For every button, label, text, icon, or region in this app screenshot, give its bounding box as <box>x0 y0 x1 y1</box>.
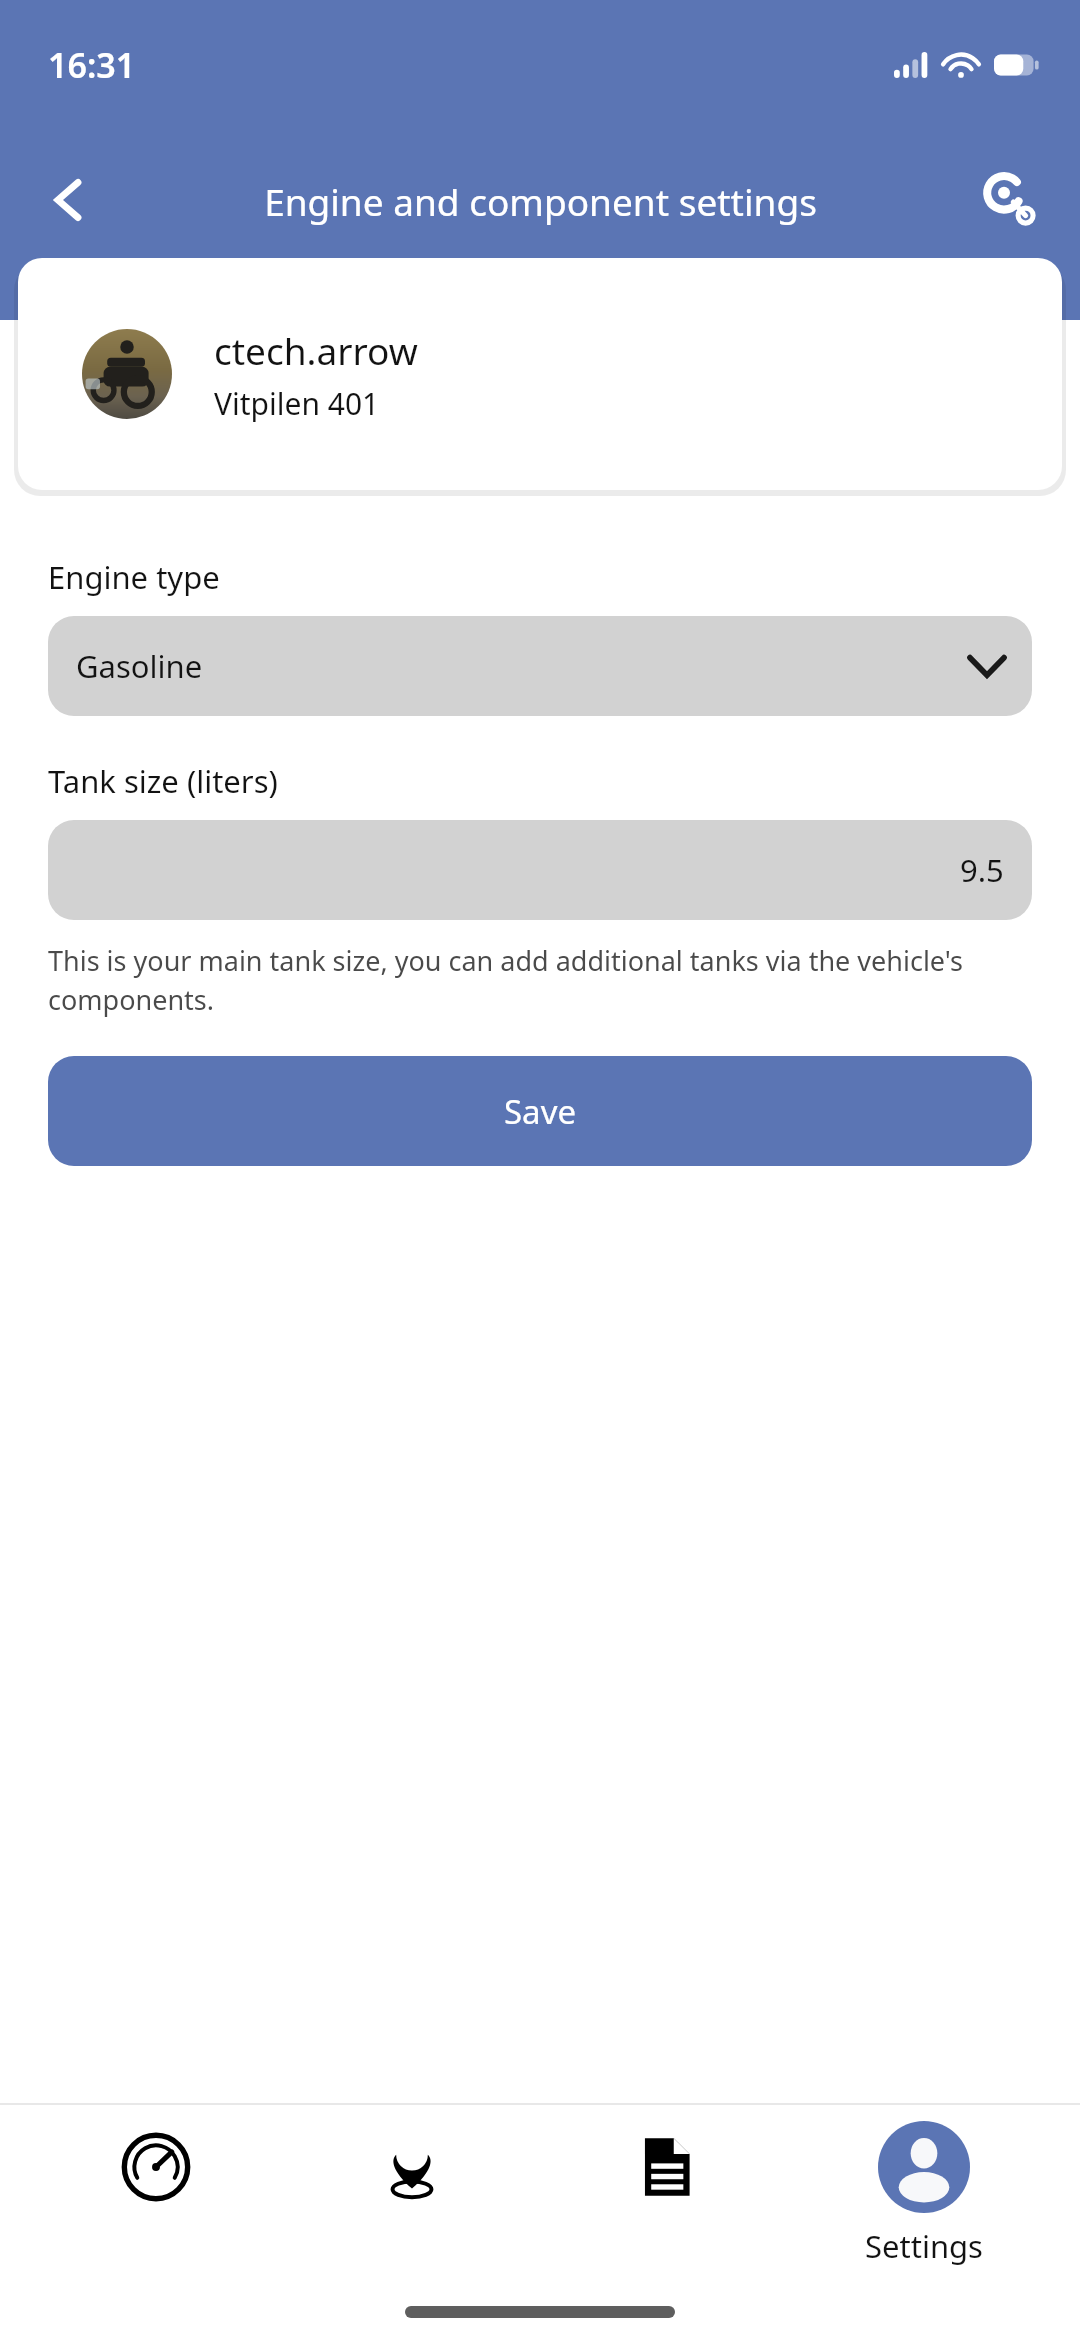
button[interactable]: Save <box>48 1056 1032 1166</box>
button[interactable]: Map <box>312 2105 512 2255</box>
staticText: ctech.arrow <box>214 325 418 375</box>
button[interactable]: ctech.arrow <box>18 258 1062 490</box>
staticText: 16:31 <box>48 42 136 88</box>
staticText: Save <box>504 1089 577 1134</box>
staticText: Settings <box>865 2225 983 2267</box>
button[interactable]: Back <box>20 152 116 248</box>
button[interactable]: 9.5 <box>48 820 1032 920</box>
staticText: 9.5 <box>960 849 1004 891</box>
staticText: Engine type <box>48 556 220 598</box>
button[interactable]: Vehicle logo <box>962 152 1058 248</box>
button[interactable]: Settings <box>824 2105 1024 2267</box>
staticText: Gasoline <box>76 645 203 687</box>
staticText: Tank size (liters) <box>48 760 278 802</box>
button[interactable]: Dashboard <box>56 2105 256 2255</box>
staticText: Vitpilen 401 <box>214 383 380 424</box>
button[interactable]: Gasoline <box>48 616 1032 716</box>
button[interactable]: Documents <box>568 2105 768 2255</box>
staticText: Engine and component settings <box>264 176 817 226</box>
staticText: This is your main tank size, you can add… <box>48 942 1032 1018</box>
